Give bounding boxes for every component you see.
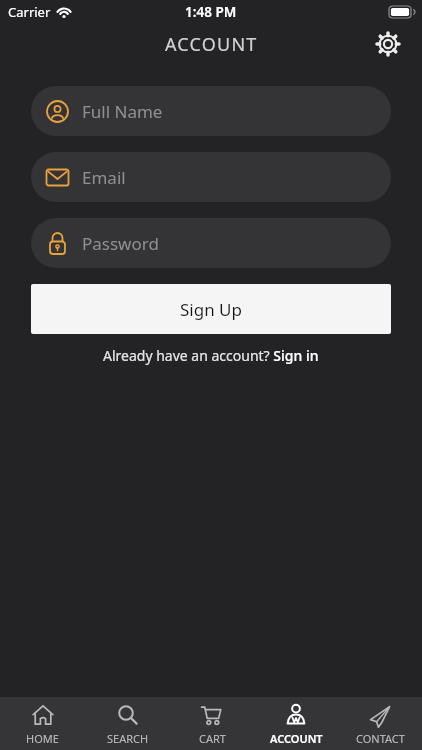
staticText: HOME — [26, 731, 59, 746]
staticText: 1:48 PM — [185, 3, 237, 21]
staticText: Full Name — [82, 100, 163, 123]
button[interactable]: CONTACT — [338, 697, 422, 750]
button[interactable]: HOME — [0, 697, 85, 750]
button[interactable]: ACCOUNT — [254, 697, 338, 750]
staticText: Already have an account? Sign in — [103, 346, 319, 365]
staticText: CART — [199, 731, 226, 746]
button[interactable] — [374, 30, 402, 58]
button[interactable]: Sign Up — [31, 284, 391, 334]
button[interactable]: Full Name — [31, 86, 391, 136]
staticText: Sign Up — [180, 298, 242, 321]
staticText: Password — [82, 232, 159, 255]
button[interactable]: Already have an account? Sign in — [0, 346, 422, 365]
staticText: CONTACT — [356, 731, 405, 746]
button[interactable]: Email — [31, 152, 391, 202]
button[interactable]: CART — [170, 697, 254, 750]
staticText: ACCOUNT — [270, 731, 323, 746]
staticText: SEARCH — [107, 731, 149, 746]
button[interactable]: SEARCH — [85, 697, 170, 750]
staticText: Email — [82, 166, 126, 189]
button[interactable]: Password — [31, 218, 391, 268]
staticText: ACCOUNT — [165, 32, 258, 57]
staticText: Carrier — [8, 3, 51, 21]
